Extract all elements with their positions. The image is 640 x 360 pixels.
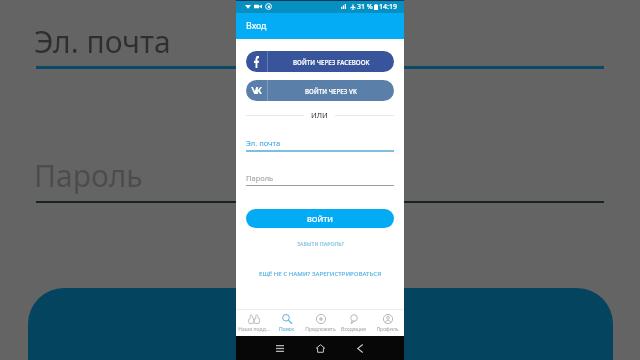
- staticText: Наши подд...: [238, 326, 270, 333]
- button[interactable]: Входящие: [337, 310, 370, 336]
- button[interactable]: Back: [351, 339, 369, 357]
- staticText: Эл. почта: [34, 21, 171, 62]
- button[interactable]: Home: [311, 339, 329, 357]
- staticText: Поиск: [279, 326, 294, 333]
- staticText: ВОЙТИ ЧЕРЕЗ VK: [305, 87, 357, 95]
- button[interactable]: ЗАБЫТИ ПАРОЛЬ?: [246, 237, 394, 249]
- staticText: 14:19: [379, 2, 397, 12]
- staticText: Пароль: [246, 173, 274, 183]
- staticText: ЕЩЁ НЕ С НАМИ? ЗАРЕГИСТРИРОВАТЬСЯ: [259, 269, 382, 277]
- staticText: Пароль: [34, 155, 143, 196]
- staticText: Профиль: [376, 326, 399, 333]
- staticText: Предложить: [305, 326, 336, 333]
- staticText: ЗАБЫТИ ПАРОЛЬ?: [297, 240, 344, 247]
- staticText: ВОЙТИ: [307, 214, 333, 224]
- button[interactable]: ВОЙТИ ЧЕРЕЗ FACEBOOK: [246, 51, 394, 72]
- staticText: Вход: [246, 20, 267, 32]
- button[interactable]: ВОЙТИ: [246, 209, 394, 228]
- button[interactable]: Поиск: [270, 310, 303, 336]
- staticText: Входящие: [341, 326, 366, 333]
- button[interactable]: ЕЩЁ НЕ С НАМИ? ЗАРЕГИСТРИРОВАТЬСЯ: [246, 267, 394, 279]
- button[interactable]: Recents: [271, 339, 289, 357]
- button[interactable]: ВОЙТИ ЧЕРЕЗ VK: [246, 80, 394, 101]
- staticText: Эл. почта: [246, 138, 281, 148]
- staticText: ИЛИ: [311, 110, 328, 120]
- button[interactable]: Предложить: [304, 310, 337, 336]
- button[interactable]: Профиль: [371, 310, 404, 336]
- staticText: ВОЙТИ ЧЕРЕЗ FACEBOOK: [293, 58, 370, 66]
- button[interactable]: Наши подд...: [237, 310, 270, 336]
- staticText: 31 %: [357, 2, 373, 12]
